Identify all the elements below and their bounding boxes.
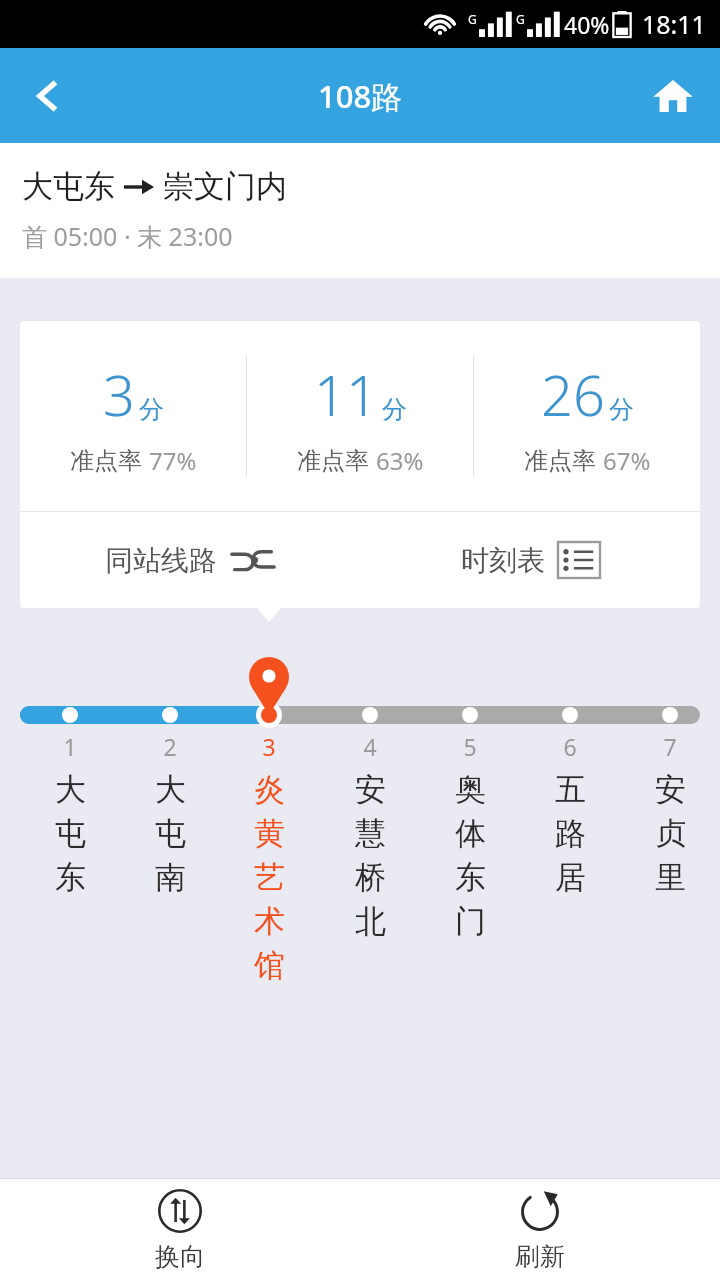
staticText: 5 [463, 731, 477, 762]
staticText: 门 [455, 902, 486, 941]
staticText: 里 [655, 858, 686, 897]
staticText: 时刻表 [461, 543, 545, 578]
button[interactable]: 26 [474, 321, 700, 511]
button[interactable]: 同站线路 [20, 512, 360, 608]
button[interactable]: 5 [430, 731, 510, 946]
button[interactable]: 3 [229, 731, 309, 990]
button[interactable]: 2 [130, 731, 210, 902]
staticText: 贞 [655, 814, 686, 853]
staticText: 大 [55, 770, 86, 809]
staticText: 同站线路 [105, 543, 217, 578]
staticText: 分 [382, 394, 407, 425]
staticText: 炎 [254, 770, 285, 809]
staticText: 慧 [355, 814, 386, 853]
staticText: 77% [149, 444, 197, 477]
staticText: 奥 [455, 770, 486, 809]
staticText: G [516, 11, 525, 27]
staticText: 北 [355, 902, 386, 941]
button[interactable]: 时刻表 [360, 512, 700, 608]
staticText: 67% [603, 444, 651, 477]
button[interactable]: 6 [530, 731, 610, 902]
staticText: 1 [63, 731, 77, 762]
staticText: 屯 [155, 814, 186, 853]
staticText: 18:11 [642, 7, 706, 41]
staticText: 安 [655, 770, 686, 809]
staticText: 黄 [254, 814, 285, 853]
button[interactable]: 4 [330, 731, 410, 946]
button[interactable]: 换向 [0, 1179, 360, 1280]
staticText: 居 [555, 858, 586, 897]
staticText: 分 [139, 394, 164, 425]
staticText: 首 05:00 · 末 23:00 [22, 219, 233, 253]
button[interactable]: 3 [20, 321, 246, 511]
staticText: 体 [455, 814, 486, 853]
staticText: 108路 [318, 75, 403, 117]
staticText: 换向 [155, 1241, 205, 1272]
staticText: 屯 [55, 814, 86, 853]
button[interactable]: Home [625, 48, 720, 143]
staticText: 术 [254, 902, 285, 941]
staticText: 大屯东 [22, 167, 115, 206]
staticText: 馆 [254, 946, 285, 985]
staticText: 11 [314, 356, 378, 432]
staticText: 桥 [355, 858, 386, 897]
staticText: 2 [163, 731, 177, 762]
staticText: 3 [262, 731, 276, 762]
staticText: 40% [564, 9, 610, 40]
staticText: 大 [155, 770, 186, 809]
staticText: 准点率 [297, 446, 369, 476]
button[interactable]: 7 [630, 731, 710, 902]
staticText: 63% [376, 444, 424, 477]
staticText: 7 [663, 731, 677, 762]
staticText: 安 [355, 770, 386, 809]
staticText: 6 [563, 731, 577, 762]
staticText: 刷新 [515, 1241, 565, 1272]
staticText: 路 [555, 814, 586, 853]
staticText: 东 [455, 858, 486, 897]
staticText: 崇文门内 [163, 167, 287, 206]
staticText: 艺 [254, 858, 285, 897]
staticText: 准点率 [70, 446, 142, 476]
button[interactable]: 1 [30, 731, 110, 902]
staticText: 4 [363, 731, 377, 762]
staticText: G [468, 11, 477, 27]
button[interactable]: 刷新 [360, 1179, 720, 1280]
staticText: 准点率 [524, 446, 596, 476]
staticText: 南 [155, 858, 186, 897]
button[interactable]: 11 [247, 321, 473, 511]
staticText: 分 [609, 394, 634, 425]
button[interactable]: Back [0, 48, 95, 143]
staticText: 26 [541, 356, 605, 432]
staticText: 五 [555, 770, 586, 809]
staticText: 3 [103, 356, 135, 432]
staticText: 东 [55, 858, 86, 897]
